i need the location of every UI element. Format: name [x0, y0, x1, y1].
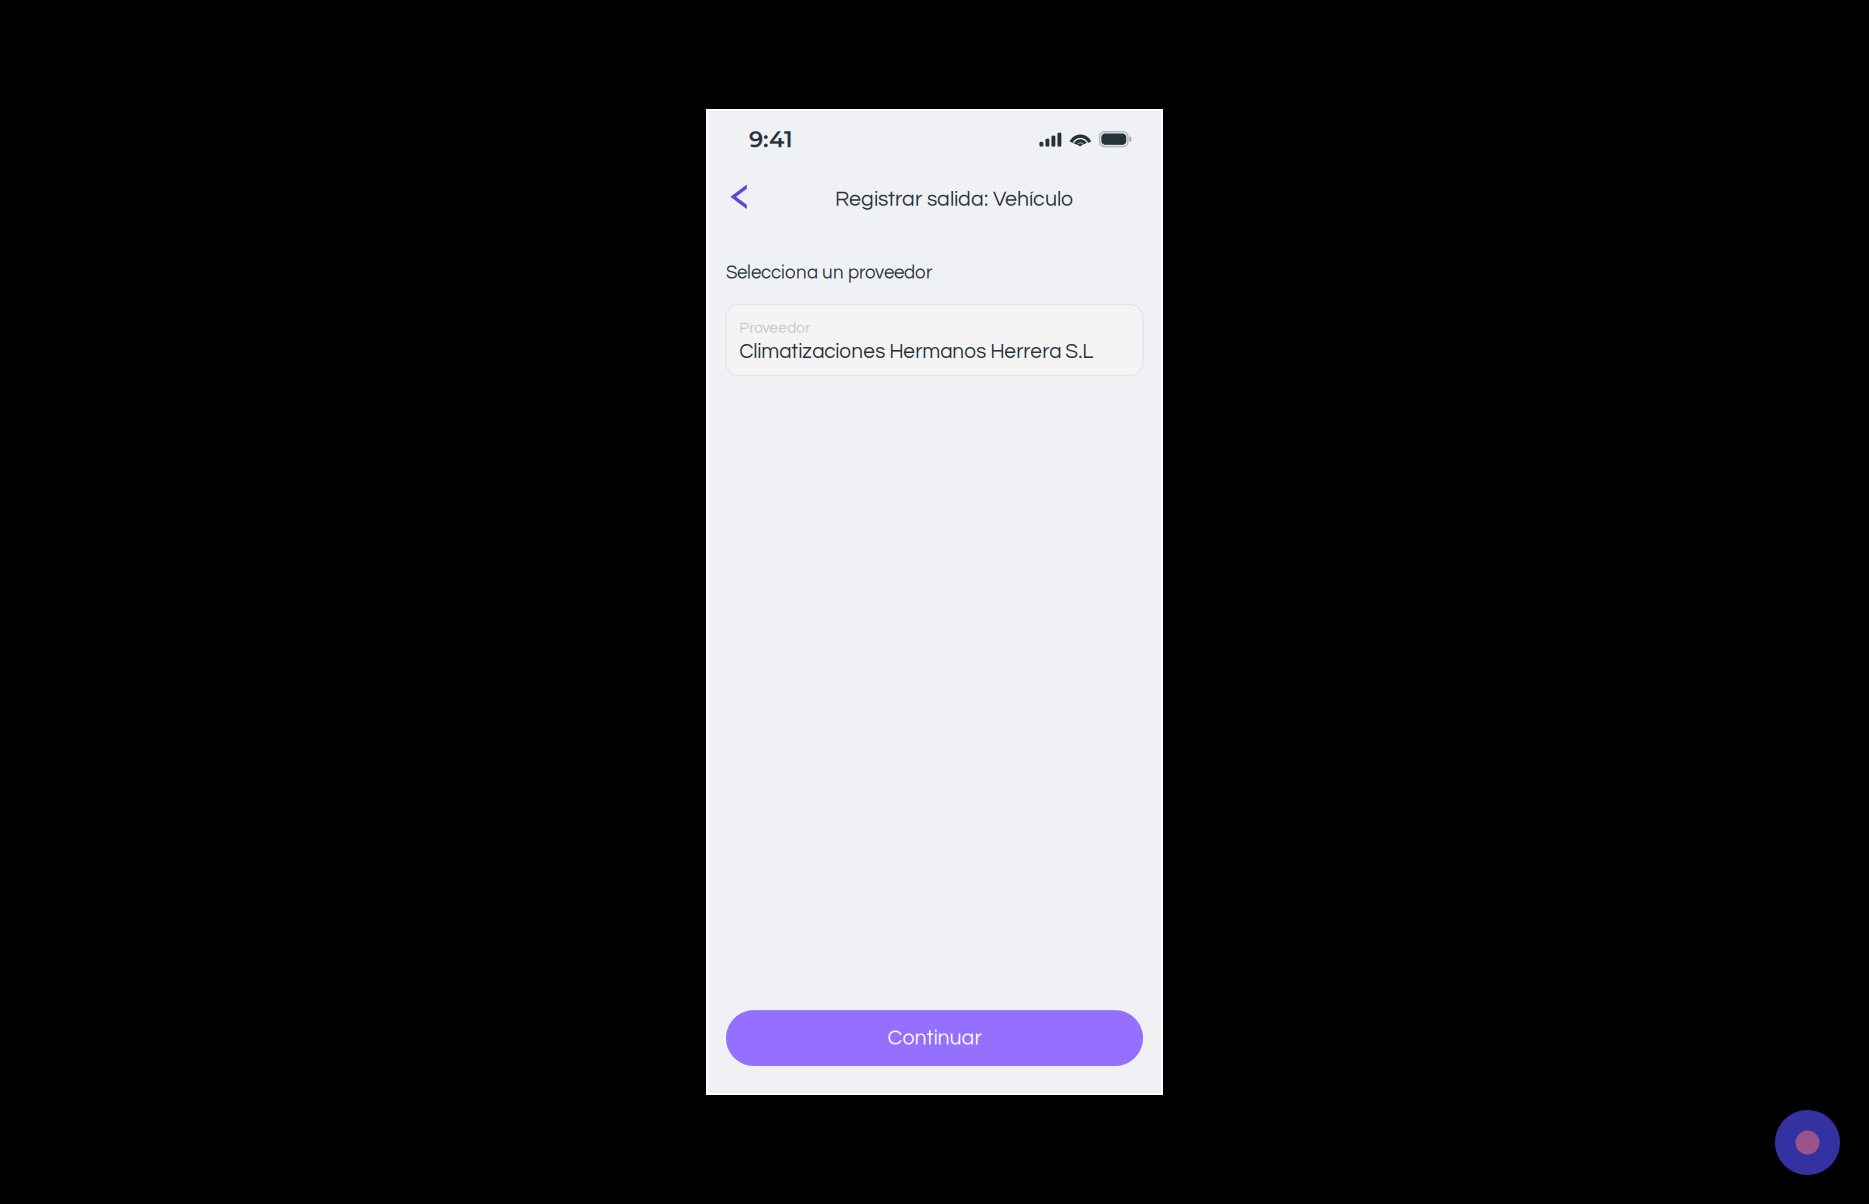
button[interactable]: Continuar [726, 1010, 1143, 1066]
button[interactable]: Record [1775, 1110, 1840, 1175]
staticText: Selecciona un proveedor [726, 263, 932, 282]
button[interactable]: Proveedor [726, 304, 1143, 376]
button[interactable]: Back [707, 172, 761, 219]
staticText: Climatizaciones Hermanos Herrera S.L [739, 341, 1093, 362]
staticText: Continuar [887, 1027, 981, 1049]
staticText: 9:41 [749, 125, 793, 153]
staticText: Proveedor [739, 320, 810, 336]
staticText: Registrar salida: Vehículo [835, 188, 1073, 210]
